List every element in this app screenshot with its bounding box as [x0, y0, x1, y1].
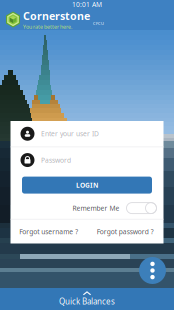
- staticText: Cornerstone: [23, 9, 90, 23]
- staticText: Password: [41, 156, 71, 164]
- staticText: Quick Balances: [59, 296, 115, 307]
- staticText: Remember Me: [72, 204, 119, 213]
- button[interactable]: Password: [10, 147, 163, 173]
- button[interactable]: Remember Me: [10, 197, 163, 219]
- staticText: Forgot username ?: [19, 227, 78, 236]
- button[interactable]: Forgot username ?: [10, 219, 87, 244]
- button[interactable]: LOGIN: [22, 177, 152, 194]
- staticText: LOGIN: [76, 181, 98, 190]
- button[interactable]: Forgot password ?: [87, 220, 163, 244]
- button[interactable]: Quick Balances: [0, 288, 174, 310]
- staticText: Forgot password ?: [97, 227, 154, 236]
- staticText: You rate better here.: [23, 23, 72, 30]
- button[interactable]: Enter your user ID: [10, 121, 163, 146]
- staticText: 10:01 AM: [72, 0, 102, 9]
- button[interactable]: More options: [139, 257, 166, 284]
- staticText: CFCU: [93, 21, 104, 26]
- staticText: Enter your user ID: [41, 129, 99, 138]
